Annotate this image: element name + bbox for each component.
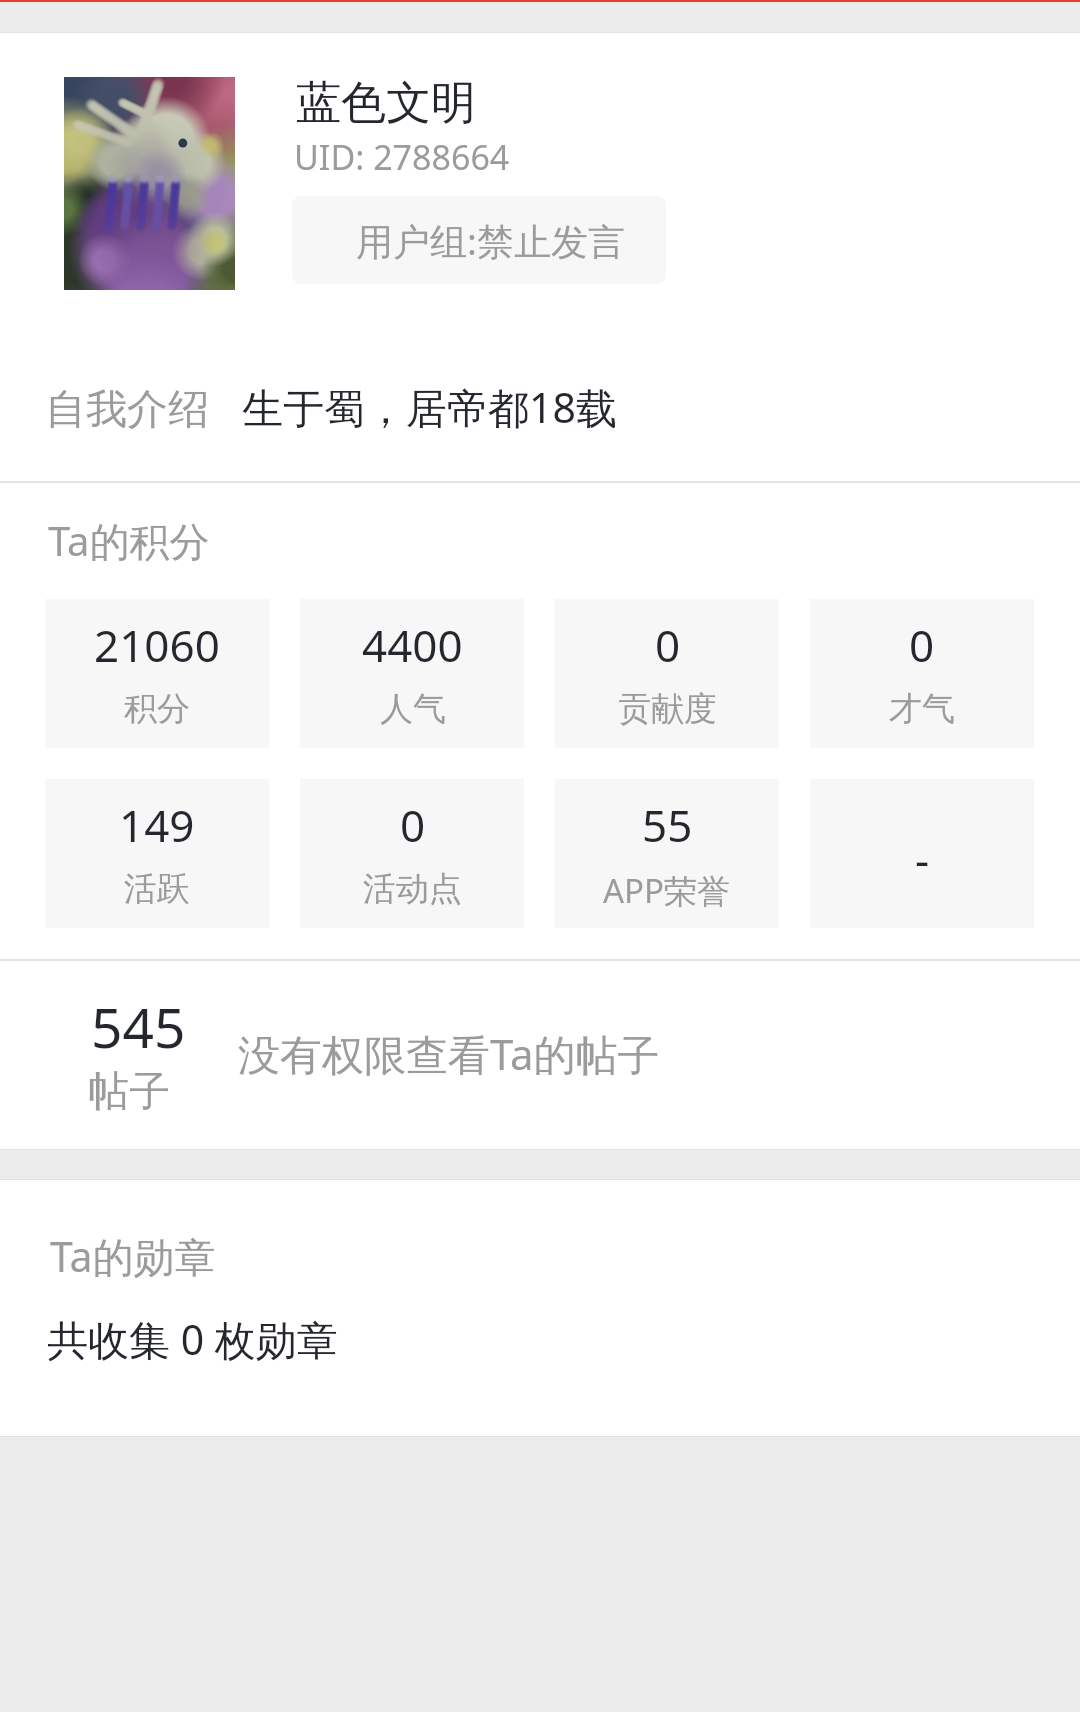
- staticText: 用户组:禁止发言: [356, 215, 625, 266]
- button[interactable]: 4400: [300, 599, 524, 748]
- button[interactable]: 55: [555, 779, 779, 928]
- staticText: 贡献度: [618, 688, 717, 730]
- staticText: 蓝色文明: [296, 75, 476, 132]
- staticText: APP荣誉: [603, 868, 731, 913]
- button[interactable]: User avatar: [64, 77, 235, 290]
- button[interactable]: -: [810, 779, 1034, 928]
- staticText: 4400: [362, 615, 463, 675]
- staticText: Ta的积分: [48, 513, 210, 568]
- staticText: 0: [909, 615, 935, 675]
- button[interactable]: 21060: [45, 599, 269, 748]
- staticText: 活跃: [124, 868, 190, 910]
- staticText: 共收集 0 枚勋章: [47, 1311, 338, 1367]
- staticText: 0: [655, 615, 681, 675]
- button[interactable]: 用户组:禁止发言: [292, 196, 666, 284]
- button[interactable]: 共收集 0 枚勋章: [0, 1285, 1080, 1436]
- button[interactable]: 0: [300, 779, 524, 928]
- staticText: 21060: [94, 615, 220, 675]
- staticText: Ta的勋章: [50, 1228, 216, 1284]
- button[interactable]: 0: [555, 599, 779, 748]
- staticText: 自我介绍: [45, 384, 209, 436]
- staticText: 才气: [889, 688, 955, 730]
- staticText: 活动点: [363, 868, 462, 910]
- staticText: 149: [119, 795, 195, 855]
- staticText: 人气: [380, 688, 446, 730]
- staticText: -: [915, 829, 930, 889]
- staticText: 生于蜀，居帝都18载: [242, 379, 617, 435]
- staticText: 没有权限查看Ta的帖子: [238, 1025, 660, 1082]
- button[interactable]: 545: [0, 959, 1080, 1149]
- button[interactable]: 蓝色文明: [280, 66, 700, 188]
- button[interactable]: 149: [45, 779, 269, 928]
- staticText: 帖子: [88, 1066, 170, 1118]
- staticText: 545: [91, 989, 186, 1064]
- button[interactable]: 自我介绍: [0, 330, 1080, 481]
- staticText: 积分: [124, 688, 190, 730]
- button[interactable]: 0: [810, 599, 1034, 748]
- staticText: 55: [642, 795, 693, 855]
- staticText: UID: 2788664: [294, 134, 510, 180]
- staticText: 0: [400, 795, 426, 855]
